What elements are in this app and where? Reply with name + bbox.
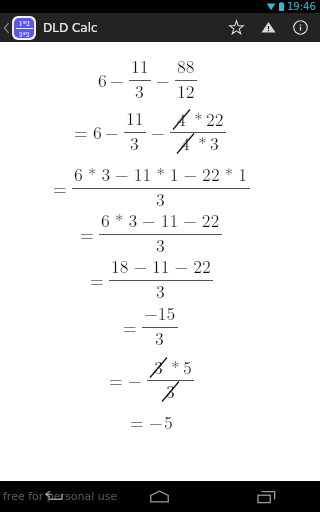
staticText: 4 [181, 130, 190, 155]
staticText: 4 [177, 106, 186, 131]
staticText: 3 [155, 325, 164, 350]
staticText: 3 [154, 354, 163, 379]
staticText: 3 [156, 186, 165, 211]
staticText: 1*2 [19, 18, 30, 28]
staticText: 6 [98, 67, 107, 92]
staticText: = [90, 267, 104, 292]
staticText: DLD Calc [43, 21, 98, 35]
button[interactable]: Home [106, 481, 213, 512]
button[interactable]: Info [284, 13, 316, 42]
staticText: free for personal use [3, 490, 118, 503]
staticText: * [194, 106, 203, 131]
staticText: 6 * 3 − 11 * 1 − 22 * 1 [74, 161, 248, 186]
staticText: 12 [177, 78, 195, 103]
staticText: * [198, 130, 207, 155]
staticText: 6 * 3 − 11 − 22 [101, 207, 220, 232]
staticText: 3 [135, 78, 144, 103]
button[interactable]: Warning [252, 13, 284, 42]
staticText: − [156, 67, 170, 92]
staticText: 88 [177, 53, 195, 78]
staticText: 3*2 [19, 29, 30, 38]
staticText: = [74, 119, 88, 144]
staticText: 5 [183, 354, 192, 379]
staticText: − [151, 119, 165, 144]
staticText: * [171, 354, 180, 379]
staticText: 22 [206, 106, 224, 131]
staticText: 3 [156, 278, 165, 303]
staticText: = [109, 367, 123, 392]
staticText: = [130, 409, 144, 434]
staticText: − [110, 67, 124, 92]
staticText: = [123, 314, 137, 339]
staticText: = [53, 175, 67, 200]
other: Up [3, 21, 10, 35]
button[interactable]: Favorite [220, 13, 252, 42]
staticText: 19:46 [287, 1, 316, 13]
staticText: 3 [210, 130, 219, 155]
staticText: 11 [131, 53, 149, 78]
staticText: 3 [130, 130, 139, 155]
staticText: 3 [166, 378, 175, 403]
button[interactable]: App icon [14, 18, 34, 38]
staticText: − [149, 409, 163, 434]
staticText: − [128, 367, 142, 392]
staticText: 18 − 11 − 22 [111, 253, 211, 278]
staticText: = [80, 221, 94, 246]
staticText: − [105, 119, 119, 144]
staticText: −15 [144, 300, 176, 325]
button[interactable]: Back [0, 481, 106, 512]
staticText: 5 [164, 409, 173, 434]
button[interactable]: Recents [213, 481, 320, 512]
staticText: 3 [156, 232, 165, 257]
staticText: 6 [93, 119, 102, 144]
staticText: 11 [126, 105, 144, 130]
